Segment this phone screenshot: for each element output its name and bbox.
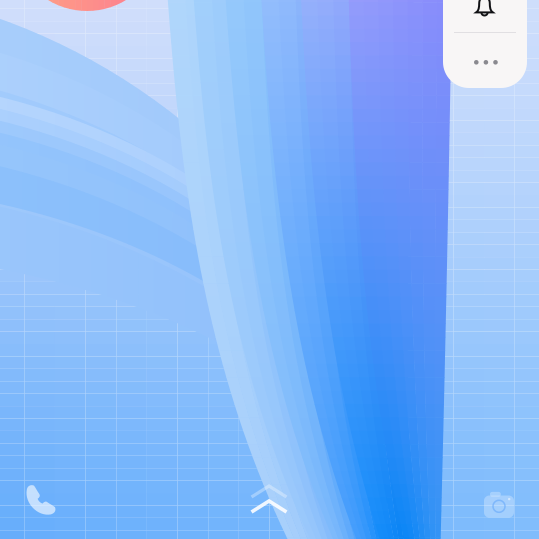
button[interactable]: Camera [477, 478, 521, 522]
button[interactable] [443, 0, 527, 88]
button[interactable]: Phone [18, 478, 62, 522]
button[interactable]: Swipe up to unlock [239, 477, 299, 521]
